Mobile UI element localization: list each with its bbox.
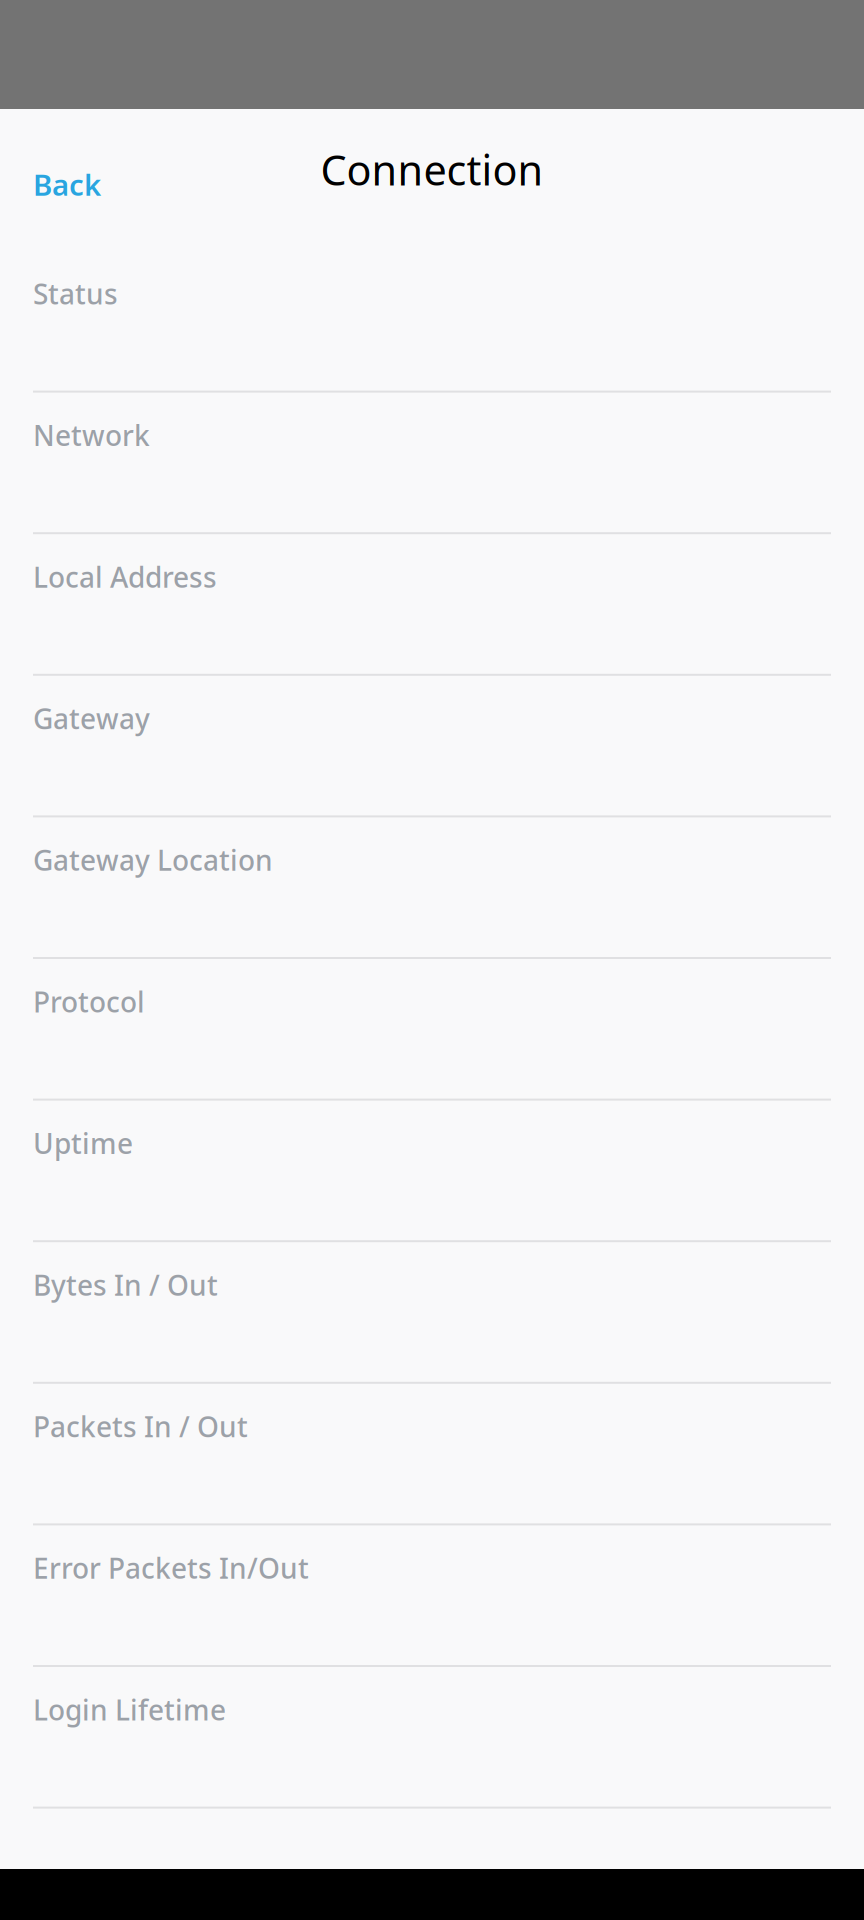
staticText: Connection <box>320 142 543 197</box>
staticText: Protocol <box>33 983 145 1020</box>
staticText: Uptime <box>33 1125 133 1162</box>
staticText: Packets In / Out <box>33 1408 248 1445</box>
staticText: Gateway <box>33 700 150 737</box>
staticText: Bytes In / Out <box>33 1266 218 1303</box>
staticText: Gateway Location <box>33 841 273 879</box>
staticText: Local Address <box>33 558 217 595</box>
staticText: Network <box>33 417 150 454</box>
staticText: Status <box>33 275 118 312</box>
staticText: Back <box>33 165 101 204</box>
staticText: Login Lifetime <box>33 1691 226 1728</box>
staticText: Error Packets In/Out <box>33 1549 309 1587</box>
button[interactable]: Back <box>0 153 121 216</box>
